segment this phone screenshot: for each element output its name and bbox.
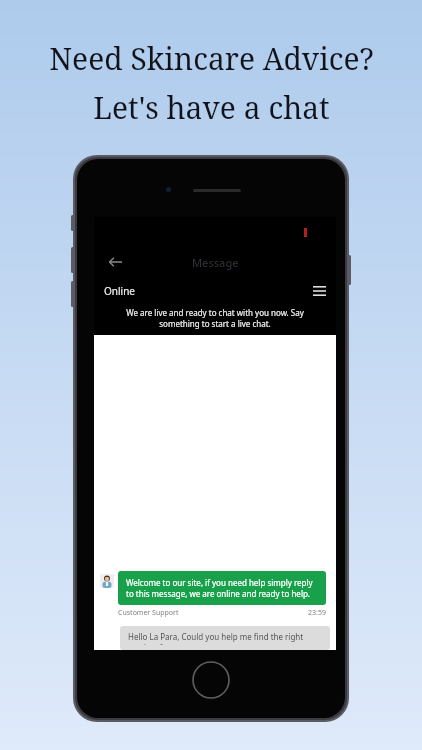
staticText: Hello La Para, Could you help me find th… [128, 631, 322, 645]
button[interactable]: Back [102, 249, 128, 275]
staticText: Message [192, 255, 239, 270]
button[interactable]: Menu [309, 281, 329, 301]
staticText: Online [104, 284, 135, 298]
staticText: We are live and ready to chat with you n… [106, 307, 324, 329]
staticText: Need Skincare Advice? [49, 38, 374, 79]
staticText: Let's have a chat [93, 87, 330, 128]
staticText: 23:59 [308, 608, 326, 618]
button[interactable]: Welcome to our site, if you need help si… [100, 571, 326, 618]
button[interactable]: Home [191, 660, 231, 700]
staticText: Welcome to our site, if you need help si… [126, 577, 318, 599]
button[interactable]: Hello La Para, Could you help me find th… [120, 626, 330, 650]
staticText: Customer Support [118, 608, 179, 618]
